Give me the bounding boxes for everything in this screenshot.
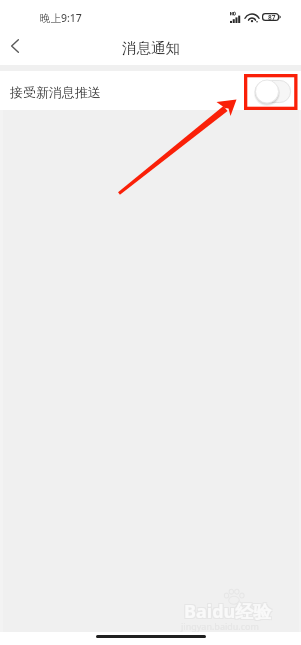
staticText: Baidu经验	[185, 600, 273, 625]
staticText: Baidu经验	[183, 600, 271, 625]
staticText: Baidu经验	[185, 598, 273, 623]
staticText: 87	[268, 13, 276, 21]
staticText: 晚上9:17	[40, 11, 82, 25]
button[interactable]: Toggle receive new message push	[255, 80, 291, 103]
staticText: 消息通知	[122, 39, 180, 57]
staticText: 接受新消息推送	[10, 84, 101, 100]
staticText: Baidu经验	[184, 599, 272, 624]
staticText: Baidu经验	[183, 598, 271, 623]
button[interactable]: Back	[2, 28, 28, 64]
staticText: jingyan.baidu.com	[181, 620, 259, 632]
button[interactable]: 接受新消息推送	[0, 71, 301, 110]
